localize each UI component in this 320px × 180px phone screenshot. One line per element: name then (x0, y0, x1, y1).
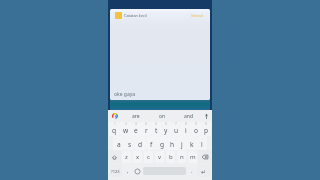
staticText: c (147, 153, 150, 161)
staticText: 9 (195, 122, 197, 126)
button[interactable]: a (113, 136, 124, 150)
staticText: 7 (175, 122, 177, 126)
button[interactable]: 4 (141, 122, 151, 136)
staticText: f (150, 140, 153, 149)
staticText: x (136, 153, 140, 161)
button[interactable]: c (144, 151, 153, 163)
button[interactable]: m (188, 151, 197, 163)
staticText: . (191, 167, 193, 175)
staticText: 1 (114, 122, 116, 126)
button[interactable]: z (122, 151, 131, 163)
button[interactable]: b (166, 151, 175, 163)
button[interactable]: 1 (109, 122, 120, 136)
staticText: z (125, 153, 128, 161)
button[interactable]: Catatan kecil (110, 9, 210, 21)
button[interactable]: l (197, 136, 207, 150)
staticText: ?123 (111, 169, 120, 174)
staticText: on (159, 113, 166, 120)
staticText: p (204, 126, 209, 135)
button[interactable]: . (187, 164, 196, 178)
staticText: v (158, 153, 162, 161)
button[interactable]: v (155, 151, 164, 163)
staticText: and (184, 113, 193, 120)
staticText: 4 (145, 122, 147, 126)
button[interactable]: g (157, 136, 167, 150)
button[interactable]: n (177, 151, 186, 163)
button[interactable]: 8 (181, 122, 191, 136)
button[interactable]: Emoji (132, 164, 142, 178)
button[interactable]: Backspace (198, 150, 212, 164)
staticText: ↵ (201, 168, 207, 175)
button[interactable]: x (133, 151, 142, 163)
staticText: , (127, 167, 129, 175)
button[interactable]: 7 (171, 122, 181, 136)
staticText: k (190, 140, 194, 149)
staticText: 6 (165, 122, 167, 126)
staticText: h (170, 140, 175, 149)
staticText: r (145, 126, 148, 135)
staticText: w (123, 126, 129, 135)
button[interactable]: Shift (108, 150, 121, 164)
button[interactable]: , (123, 164, 132, 178)
button[interactable]: 5 (151, 122, 161, 136)
staticText: g (160, 140, 165, 149)
button[interactable]: ?123 (109, 165, 122, 177)
button[interactable]: 3 (131, 122, 141, 136)
staticText: l (201, 140, 203, 149)
staticText: y (164, 126, 168, 135)
staticText: Catatan kecil (124, 13, 147, 18)
staticText: b (169, 153, 173, 161)
staticText: m (190, 153, 196, 161)
staticText: e (134, 126, 138, 135)
button[interactable]: 6 (161, 122, 171, 136)
staticText: 0 (205, 122, 207, 126)
staticText: 3 (135, 122, 137, 126)
staticText: t (155, 126, 158, 135)
staticText: o (194, 126, 198, 135)
button[interactable]: h (167, 136, 177, 150)
button[interactable]: j (177, 136, 187, 150)
staticText: Selesai (191, 13, 204, 18)
button[interactable]: on (149, 110, 175, 122)
button[interactable]: 0 (201, 122, 211, 136)
staticText: j (181, 140, 183, 149)
staticText: n (180, 153, 184, 161)
staticText: i (185, 126, 187, 135)
button[interactable]: and (175, 110, 201, 122)
staticText: q (112, 126, 117, 135)
button[interactable]: k (187, 136, 197, 150)
staticText: u (174, 126, 179, 135)
staticText: 8 (185, 122, 187, 126)
button[interactable]: Enter (197, 165, 211, 177)
button[interactable]: 2 (120, 122, 131, 136)
staticText: a (117, 140, 121, 149)
staticText: oke gaya (114, 91, 136, 98)
button[interactable]: 9 (191, 122, 201, 136)
staticText: s (128, 140, 132, 149)
button[interactable]: f (146, 136, 157, 150)
button[interactable]: Google (108, 110, 122, 122)
button[interactable]: are (122, 110, 149, 122)
button[interactable]: d (135, 136, 146, 150)
staticText: are (132, 113, 140, 120)
staticText: 2 (125, 122, 127, 126)
staticText: 5 (155, 122, 157, 126)
staticText: d (138, 140, 143, 149)
button[interactable]: s (124, 136, 135, 150)
